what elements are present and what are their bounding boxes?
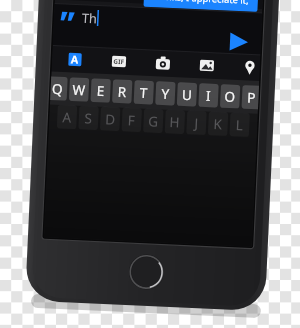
button[interactable]: Home bbox=[152, 256, 188, 292]
button[interactable]: Send bbox=[230, 118, 254, 140]
button[interactable]: Message input bbox=[58, 98, 228, 122]
